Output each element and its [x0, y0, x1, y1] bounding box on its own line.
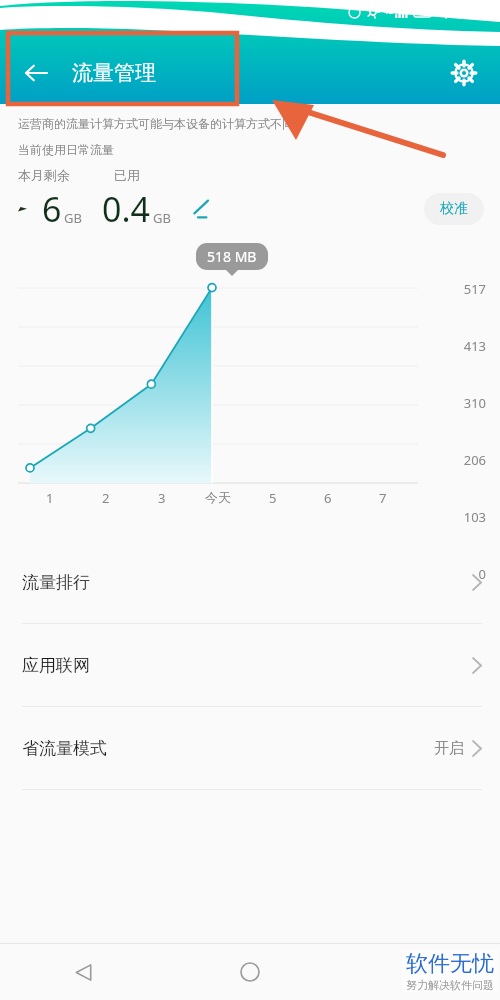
staticText: 运营商的流量计算方式可能与本设备的计算方式不同。 — [18, 116, 306, 131]
button[interactable]: Edit — [185, 192, 219, 226]
button[interactable]: Settings — [444, 53, 484, 93]
staticText: 206 — [0, 451, 486, 469]
staticText: 0 — [0, 565, 486, 583]
staticText: 5 — [269, 489, 277, 507]
staticText: 应用联网 — [22, 655, 90, 676]
staticText: 校准 — [440, 200, 468, 218]
button[interactable]: Back — [0, 944, 166, 1000]
staticText: 2 — [102, 489, 110, 507]
staticText: GB — [64, 209, 82, 227]
button[interactable]: Back — [18, 55, 54, 91]
button[interactable]: Home — [166, 944, 333, 1000]
staticText: 310 — [0, 394, 486, 412]
staticText: 流量排行 — [22, 572, 90, 593]
staticText: 1 — [46, 489, 54, 507]
staticText: 开启 — [434, 739, 464, 758]
button[interactable]: 流量排行 — [0, 541, 500, 623]
button[interactable]: 校准 — [424, 193, 484, 225]
staticText: 努力解决软件问题 — [406, 978, 494, 992]
staticText: 当前使用日常流量 — [18, 142, 114, 157]
staticText: 下午1:59 — [440, 3, 492, 21]
staticText: 省流量模式 — [22, 738, 107, 759]
staticText: 0.4 — [102, 186, 151, 232]
staticText: 6 — [324, 489, 332, 507]
staticText: 今天 — [205, 489, 231, 505]
staticText: 已用 — [114, 167, 140, 183]
staticText: 103 — [0, 508, 486, 526]
staticText: 本月剩余 — [18, 167, 70, 183]
staticText: 517 — [0, 280, 486, 298]
staticText: GB — [153, 209, 171, 227]
staticText: 4G — [384, 7, 394, 17]
staticText: 6 — [42, 186, 62, 232]
staticText: 518 MB — [207, 247, 257, 266]
staticText: 流量管理 — [72, 60, 156, 86]
button[interactable]: 省流量模式 — [0, 707, 500, 789]
staticText: 3 — [158, 489, 166, 507]
button[interactable]: Recents — [333, 944, 500, 1000]
staticText: 413 — [0, 337, 486, 355]
staticText: 软件无忧 — [406, 950, 494, 978]
staticText: 7 — [379, 489, 387, 507]
button[interactable]: 应用联网 — [0, 624, 500, 706]
